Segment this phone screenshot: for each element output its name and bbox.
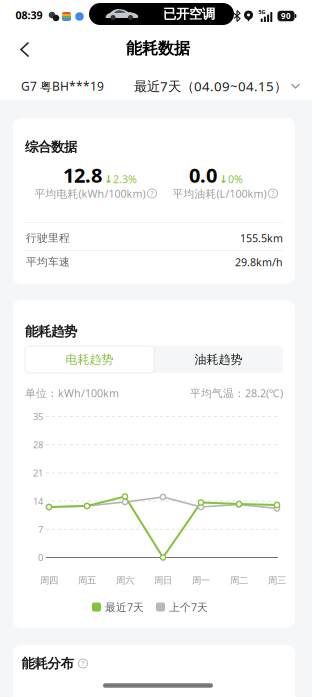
button[interactable]: 电耗趋势 [25, 346, 154, 373]
staticText: 0.0 [189, 162, 217, 188]
staticText: 周四 [40, 575, 58, 586]
staticText: 平均油耗(L/100km) [172, 186, 266, 201]
staticText: ↓ [104, 173, 113, 185]
staticText: 28 [33, 438, 43, 451]
staticText: 能耗数据 [126, 39, 190, 58]
staticText: G7 粤BH***19 [21, 78, 104, 94]
staticText: 90 [281, 11, 291, 21]
staticText: 油耗趋势 [194, 352, 242, 367]
button[interactable]: 油耗趋势 [154, 346, 283, 373]
staticText: 29.8km/h [235, 255, 283, 269]
staticText: 0% [228, 172, 243, 186]
button[interactable]: 帮助 [147, 189, 156, 198]
staticText: 周五 [78, 575, 96, 586]
staticText: ? [150, 189, 153, 198]
staticText: 平均电耗(kWh/100km) [34, 186, 145, 201]
staticText: ↓ [219, 173, 228, 185]
button[interactable]: 最近7天（04.09~04.15） [120, 77, 300, 95]
staticText: 平均车速 [26, 255, 70, 268]
staticText: 14 [33, 495, 43, 507]
button[interactable]: 返回 [12, 33, 38, 65]
staticText: 21 [33, 467, 43, 479]
staticText: 35 [33, 410, 43, 423]
staticText: 0 [38, 551, 43, 564]
staticText: 电耗趋势 [65, 352, 113, 367]
staticText: ? [81, 659, 84, 668]
staticText: 综合数据 [25, 139, 77, 155]
staticText: 周六 [116, 575, 134, 586]
staticText: 最近7天（04.09~04.15） [134, 77, 287, 95]
staticText: 单位：kWh/100km [25, 386, 119, 400]
staticText: 能耗趋势 [25, 323, 77, 340]
staticText: 平均气温：28.2(℃) [190, 386, 283, 400]
staticText: 周一 [192, 575, 210, 586]
staticText: 7 [38, 523, 43, 535]
staticText: ? [271, 189, 274, 198]
button[interactable]: 帮助 [78, 659, 87, 668]
staticText: 能耗分布 [21, 655, 73, 672]
staticText: 周二 [230, 575, 248, 586]
staticText: 2.3% [113, 172, 137, 186]
staticText: 5G [258, 8, 265, 16]
staticText: 行驶里程 [26, 231, 70, 244]
button[interactable]: 已开空调 [89, 3, 234, 25]
staticText: 周日 [154, 575, 172, 586]
staticText: 最近7天 [105, 600, 144, 614]
staticText: 已开空调 [163, 6, 215, 22]
staticText: 155.5km [240, 231, 283, 245]
staticText: 08:39 [15, 8, 42, 22]
staticText: 12.8 [63, 162, 102, 188]
button[interactable]: 帮助 [268, 189, 277, 198]
staticText: 周三 [268, 575, 286, 586]
staticText: 上个7天 [169, 600, 208, 614]
